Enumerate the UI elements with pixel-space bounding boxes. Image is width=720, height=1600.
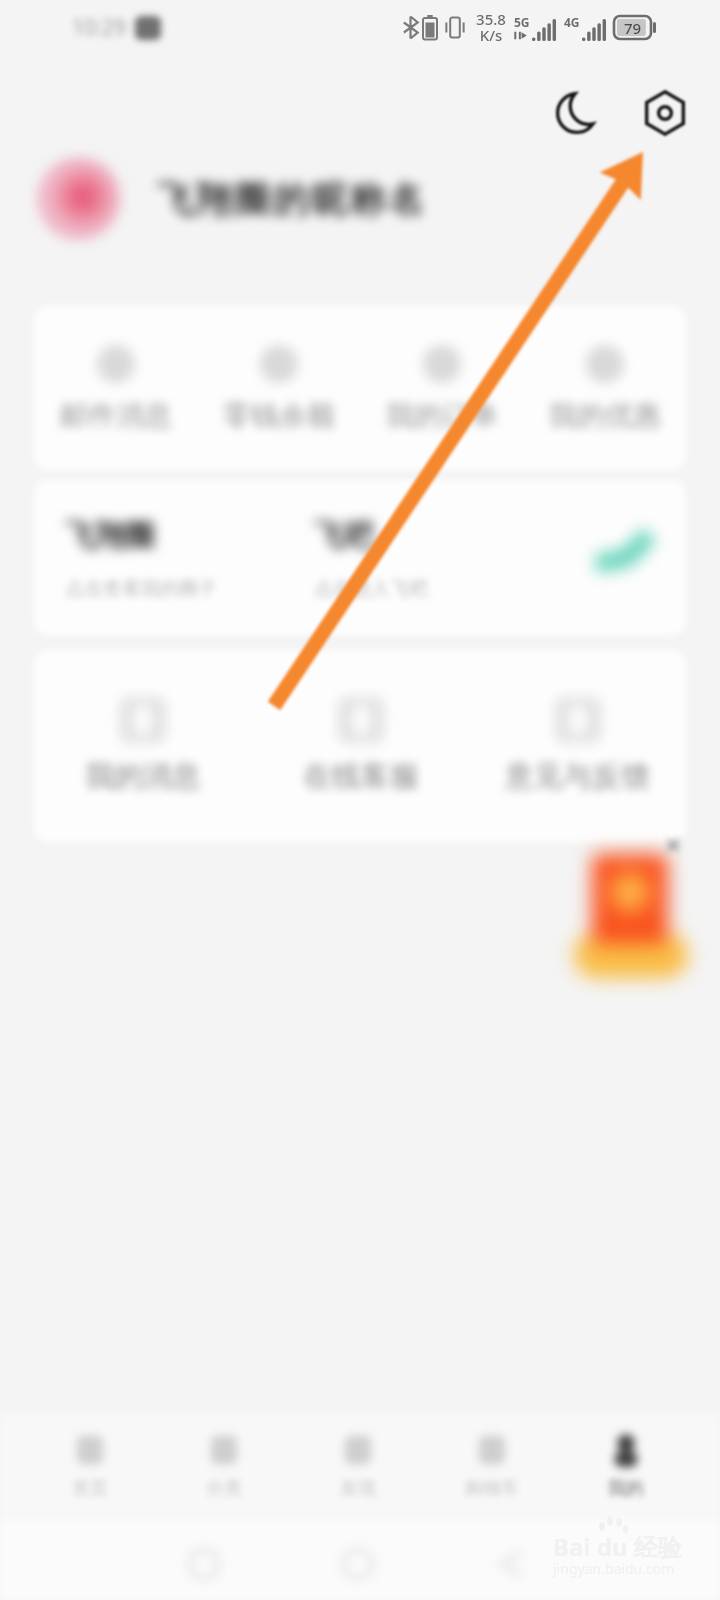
staticText: Bai du 经验: [553, 1530, 682, 1563]
staticText: 邮件消息: [60, 398, 172, 433]
staticText: 我的: [608, 1477, 644, 1500]
button[interactable]: Night mode: [548, 84, 606, 142]
staticText: 我的优惠: [549, 398, 661, 433]
staticText: 79: [624, 18, 642, 38]
button[interactable]: 购物车: [425, 1412, 559, 1520]
staticText: 飞翔圈: [65, 517, 155, 555]
staticText: 在线客服: [303, 758, 419, 795]
button[interactable]: 我的消息: [34, 650, 252, 842]
button[interactable]: 发现: [291, 1412, 425, 1520]
button[interactable]: 首页: [23, 1412, 157, 1520]
button[interactable]: Settings: [636, 84, 694, 142]
staticText: 点击查看我的圈子: [65, 577, 217, 601]
button[interactable]: Promotion: [560, 828, 700, 998]
button[interactable]: 分类: [157, 1412, 291, 1520]
staticText: jingyan.baidu.com: [553, 1559, 675, 1578]
staticText: 我的订单: [386, 398, 498, 433]
button[interactable]: Trend: [496, 480, 686, 635]
button[interactable]: 零钱余额: [197, 306, 360, 470]
staticText: 我的消息: [85, 758, 201, 795]
staticText: 点击进入飞吧: [314, 577, 428, 601]
button[interactable]: 意见与反馈: [469, 650, 686, 842]
button[interactable]: 飞吧: [265, 480, 496, 635]
button[interactable]: 我的优惠: [523, 306, 686, 470]
button[interactable]: 飞翔圈: [34, 480, 265, 635]
staticText: 分类: [206, 1477, 242, 1500]
staticText: 4G: [564, 14, 580, 30]
staticText: 10:29: [72, 13, 126, 42]
staticText: 首页: [72, 1477, 108, 1500]
staticText: 35.8 K/s: [476, 9, 506, 45]
button[interactable]: 在线客服: [252, 650, 469, 842]
button[interactable]: 飞翔圈的昵称名: [0, 155, 720, 255]
staticText: 购物车: [465, 1477, 519, 1500]
staticText: 5G: [514, 14, 530, 30]
staticText: 飞翔圈的昵称名: [157, 177, 427, 222]
button[interactable]: 我的订单: [360, 306, 523, 470]
staticText: 发现: [340, 1477, 376, 1500]
staticText: 意见与反馈: [505, 758, 650, 795]
button[interactable]: 邮件消息: [34, 306, 197, 470]
staticText: 零钱余额: [223, 398, 335, 433]
staticText: 飞吧: [314, 517, 374, 555]
button[interactable]: 我的: [559, 1412, 693, 1520]
